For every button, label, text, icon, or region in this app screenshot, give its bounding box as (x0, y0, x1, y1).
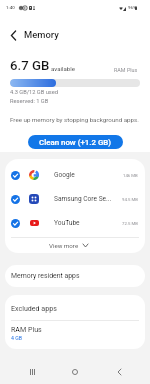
staticText: Memory resident apps (11, 272, 80, 280)
staticText: 72.5 MB (122, 221, 138, 226)
staticText: 146 MB (123, 173, 138, 178)
staticText: Excluded apps (11, 304, 57, 312)
button[interactable]: Recent apps (20, 360, 44, 384)
button[interactable]: YouTube (5, 211, 145, 235)
staticText: Free up memory by stopping background ap… (10, 116, 139, 123)
button[interactable]: Back (107, 360, 131, 384)
button[interactable]: Samsung Core Se... (5, 187, 145, 211)
staticText: 94.5 MB (122, 197, 138, 202)
staticText: 4 GB (11, 335, 22, 341)
button[interactable]: Memory resident apps (5, 265, 145, 287)
staticText: Samsung Core Se... (54, 195, 120, 203)
button[interactable]: Home (63, 360, 87, 384)
button[interactable]: Excluded apps (5, 295, 145, 320)
button[interactable]: View more (5, 238, 145, 253)
staticText: 4.3 GB/12 GB used (10, 89, 58, 96)
staticText: 96% (128, 5, 137, 10)
staticText: Google (54, 171, 121, 179)
button[interactable]: RAM Plus (5, 321, 145, 349)
staticText: available (51, 65, 75, 72)
staticText: 6.7 GB (10, 58, 50, 73)
staticText: View more (49, 242, 79, 249)
staticText: RAM Plus (114, 67, 138, 73)
staticText: Memory (24, 29, 59, 40)
staticText: YouTube (54, 219, 120, 227)
staticText: Reserved: 1 GB (10, 98, 49, 105)
staticText: 1:40 (6, 5, 15, 10)
staticText: RAM Plus (11, 325, 42, 333)
button[interactable]: Navigate up (4, 19, 23, 52)
button[interactable]: Clean now (+1.2 GB) (28, 135, 123, 149)
button[interactable]: Google (5, 163, 145, 187)
staticText: Clean now (+1.2 GB) (39, 138, 112, 147)
